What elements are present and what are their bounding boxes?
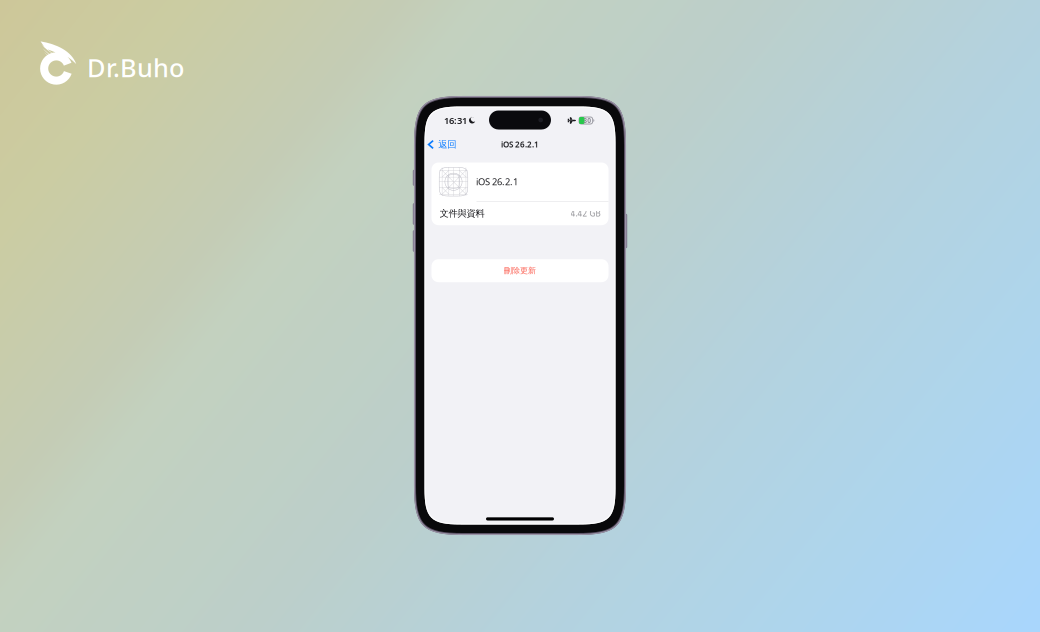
staticText: 文件與資料 — [439, 208, 484, 219]
staticText: iOS 26.2.1 — [501, 139, 539, 150]
button[interactable]: 刪除更新 — [431, 259, 608, 282]
button[interactable]: 返回 — [424, 136, 461, 153]
staticText: 返回 — [438, 139, 456, 150]
staticText: Dr.Buho — [87, 51, 184, 84]
staticText: 30 — [583, 116, 591, 125]
staticText: 刪除更新 — [504, 266, 536, 276]
staticText: iOS 26.2.1 — [476, 176, 518, 188]
staticText: 16:31 — [444, 114, 467, 127]
staticText: 4.42 GB — [570, 208, 600, 219]
